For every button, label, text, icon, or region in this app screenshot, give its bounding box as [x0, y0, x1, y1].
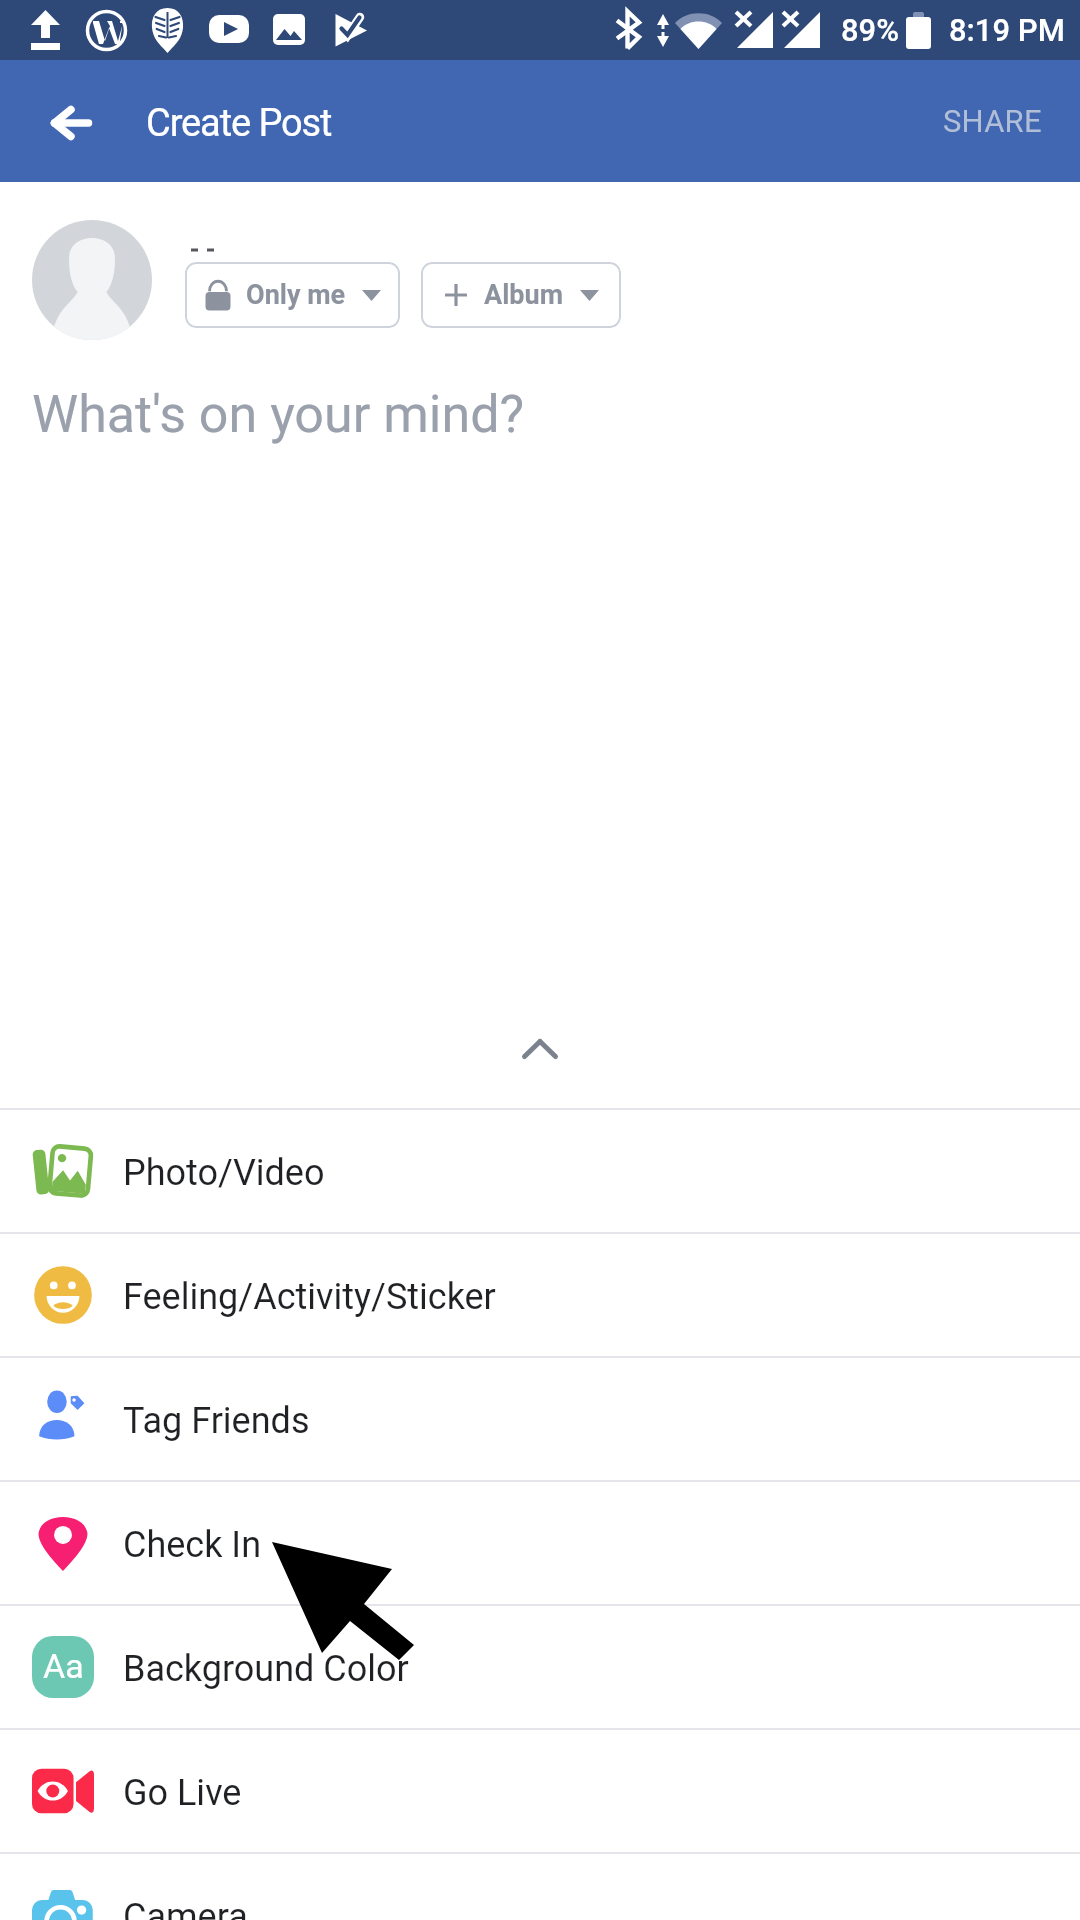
- button[interactable]: Only me: [185, 262, 400, 328]
- staticText: Photo/Video: [123, 1152, 325, 1194]
- staticText: Camera: [123, 1896, 248, 1920]
- button[interactable]: Photo/Video: [0, 1110, 1080, 1232]
- staticText: 89%: [841, 12, 900, 48]
- staticText: SHARE: [943, 103, 1042, 139]
- button[interactable]: Back: [10, 60, 132, 182]
- staticText: Only me: [246, 279, 346, 311]
- button[interactable]: Camera: [0, 1854, 1080, 1920]
- staticText: Aa: [43, 1646, 84, 1686]
- staticText: What's on your mind?: [32, 384, 525, 445]
- staticText: Check In: [123, 1524, 262, 1566]
- button[interactable]: Expand options: [0, 1005, 1080, 1105]
- staticText: Go Live: [123, 1772, 242, 1814]
- button[interactable]: SHARE: [902, 60, 1080, 182]
- button[interactable]: Profile photo: [32, 220, 152, 340]
- staticText: Background Color: [123, 1648, 409, 1690]
- button[interactable]: Go Live: [0, 1730, 1080, 1852]
- button[interactable]: Aa: [0, 1606, 1080, 1728]
- button[interactable]: Feeling/Activity/Sticker: [0, 1234, 1080, 1356]
- staticText: Feeling/Activity/Sticker: [123, 1276, 496, 1318]
- button[interactable]: Album: [421, 262, 621, 328]
- button[interactable]: Tag Friends: [0, 1358, 1080, 1480]
- staticText: Tag Friends: [123, 1400, 310, 1442]
- button[interactable]: Check In: [0, 1482, 1080, 1604]
- staticText: Create Post: [146, 101, 332, 146]
- staticText: Album: [484, 279, 564, 311]
- staticText: 8:19 PM: [949, 12, 1065, 48]
